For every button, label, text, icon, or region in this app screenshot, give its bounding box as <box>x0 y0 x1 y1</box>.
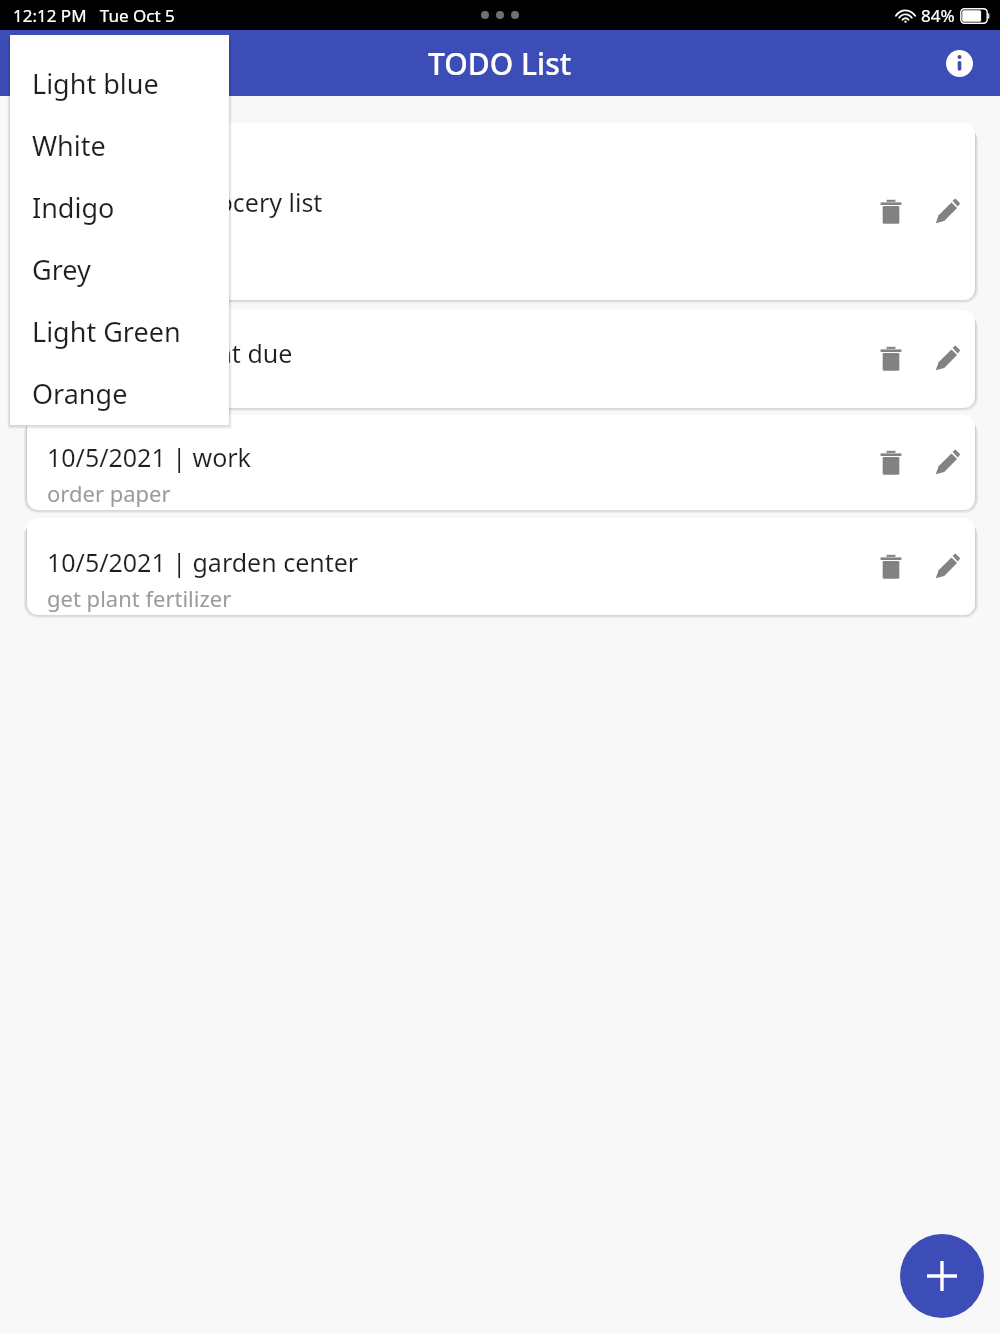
staticText: 10/5/2021 | rent due <box>47 336 293 370</box>
staticText: Light Green <box>32 313 181 350</box>
staticText: Indigo <box>32 189 115 226</box>
button[interactable]: 10/5/2021 | grocery list <box>27 123 975 300</box>
staticText: White <box>32 127 106 164</box>
staticText: Grey <box>32 251 91 288</box>
button[interactable]: 10/5/2021 | garden center <box>27 518 975 615</box>
button[interactable]: Delete <box>863 331 919 387</box>
staticText: TODO List <box>428 43 572 84</box>
staticText: 10/5/2021 | grocery list <box>47 185 323 219</box>
staticText: order paper <box>47 478 171 508</box>
staticText: 84% <box>921 4 955 27</box>
button[interactable]: Edit <box>919 539 975 595</box>
button[interactable]: Info <box>936 40 982 86</box>
button[interactable]: Edit <box>919 331 975 387</box>
button[interactable]: Edit <box>919 184 975 240</box>
button[interactable]: Delete <box>863 184 919 240</box>
staticText: buy eggs <box>47 223 142 253</box>
button[interactable]: White <box>10 114 229 176</box>
button[interactable]: 10/5/2021 | work <box>27 415 975 510</box>
button[interactable]: Edit <box>919 435 975 491</box>
staticText: 10/5/2021 | garden center <box>47 545 359 579</box>
staticText: pay landlord <box>47 374 177 404</box>
button[interactable]: Light Green <box>10 300 229 362</box>
button[interactable]: Delete <box>863 539 919 595</box>
button[interactable]: Add task <box>900 1234 984 1318</box>
button[interactable]: Light blue <box>10 52 229 114</box>
button[interactable]: Indigo <box>10 176 229 238</box>
staticText: 12:12 PM Tue Oct 5 <box>13 4 175 27</box>
staticText: get plant fertilizer <box>47 583 232 613</box>
staticText: 10/5/2021 | work <box>47 440 251 474</box>
button[interactable]: Orange <box>10 362 229 424</box>
button[interactable]: Grey <box>10 238 229 300</box>
staticText: Light blue <box>32 65 159 102</box>
button[interactable]: Delete <box>863 435 919 491</box>
staticText: Orange <box>32 375 128 412</box>
button[interactable]: 10/5/2021 | rent due <box>27 310 975 408</box>
